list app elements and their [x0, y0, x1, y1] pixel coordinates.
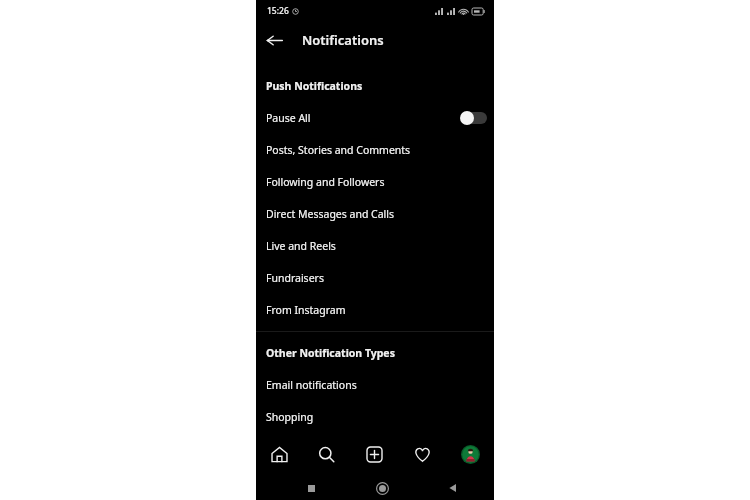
button[interactable]: Posts, Stories and Comments: [256, 134, 494, 166]
staticText: Shopping: [266, 410, 314, 424]
button[interactable]: Live and Reels: [256, 230, 494, 262]
button[interactable]: Fundraisers: [256, 262, 494, 294]
button[interactable]: Recent apps: [300, 477, 322, 499]
staticText: Notifications: [302, 31, 384, 49]
staticText: Other Notification Types: [266, 346, 395, 360]
button[interactable]: Search: [303, 433, 350, 475]
button[interactable]: Home: [371, 477, 393, 499]
staticText: Pause All: [266, 111, 460, 125]
staticText: Push Notifications: [266, 79, 363, 93]
staticText: Fundraisers: [266, 271, 324, 285]
button[interactable]: Home: [256, 433, 303, 475]
button[interactable]: Back: [260, 26, 288, 54]
staticText: Direct Messages and Calls: [266, 207, 395, 221]
staticText: Posts, Stories and Comments: [266, 143, 411, 157]
staticText: 15:26: [267, 5, 289, 17]
button[interactable]: Create new post: [350, 433, 398, 475]
staticText: From Instagram: [266, 303, 346, 317]
button[interactable]: From Instagram: [256, 294, 494, 326]
button[interactable]: Email notifications: [256, 369, 494, 401]
button[interactable]: Activity: [398, 433, 446, 475]
button[interactable]: Shopping: [256, 401, 494, 433]
staticText: Email notifications: [266, 378, 357, 392]
button[interactable]: Back: [442, 477, 464, 499]
staticText: Following and Followers: [266, 175, 385, 189]
button[interactable]: Following and Followers: [256, 166, 494, 198]
button[interactable]: Profile: [446, 433, 494, 475]
staticText: Live and Reels: [266, 239, 336, 253]
button[interactable]: Pause All: [256, 102, 494, 134]
button[interactable]: Direct Messages and Calls: [256, 198, 494, 230]
